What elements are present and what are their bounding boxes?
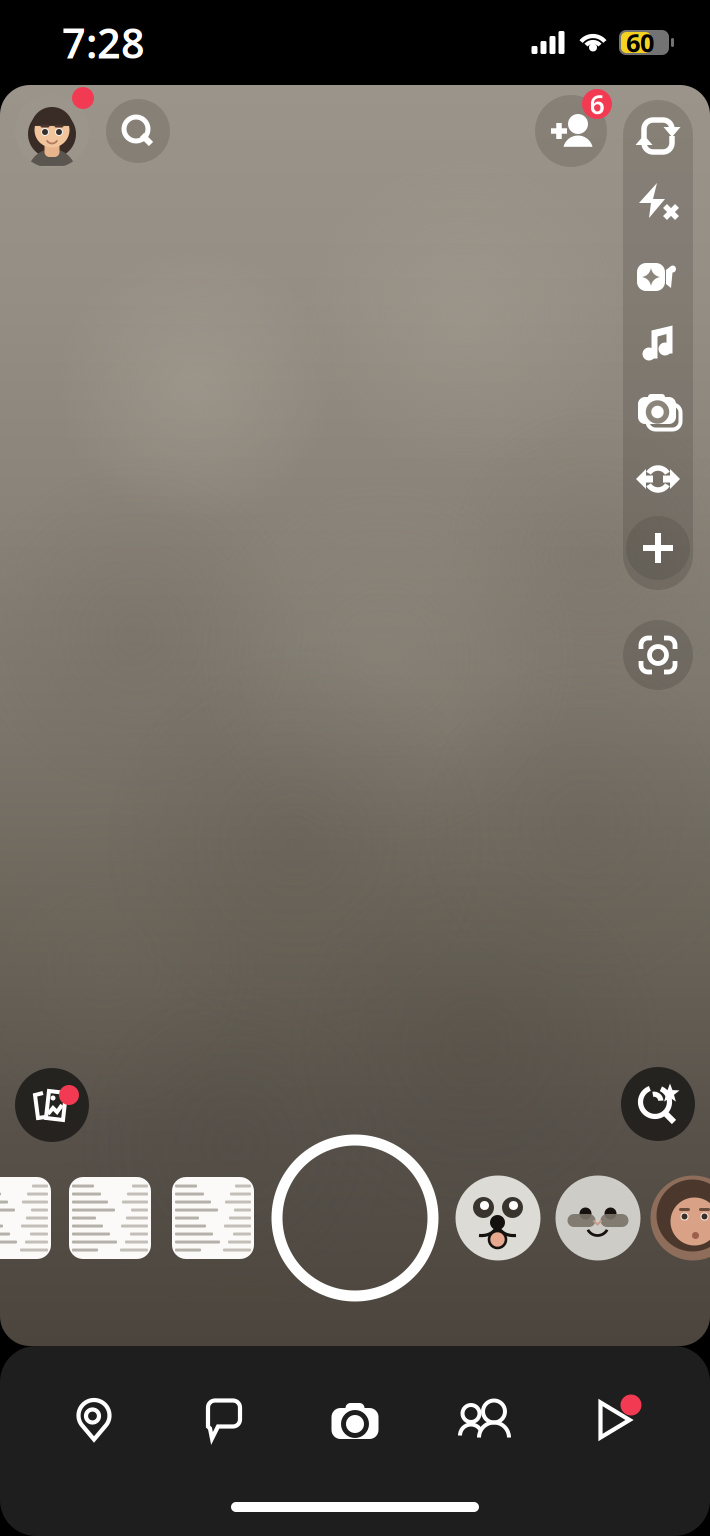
button[interactable]: Search <box>101 94 175 168</box>
button[interactable]: Camera <box>295 1370 415 1470</box>
button[interactable]: Add video <box>623 244 693 310</box>
button[interactable]: More <box>623 513 693 583</box>
button[interactable]: Friends <box>426 1370 546 1470</box>
button[interactable]: Map <box>34 1370 154 1470</box>
button[interactable]: Flip camera <box>623 102 693 168</box>
button[interactable]: Add friends <box>528 88 614 174</box>
button[interactable]: Spotlight <box>555 1370 675 1470</box>
button[interactable]: Scan <box>620 617 696 693</box>
staticText: 60 <box>626 26 654 59</box>
staticText: 7:28 <box>62 15 145 70</box>
button[interactable]: Camera roll <box>623 377 693 443</box>
staticText: 6 <box>589 86 604 122</box>
button[interactable]: Lens explorer <box>616 1062 700 1146</box>
button[interactable]: Flash off <box>623 169 693 235</box>
button[interactable]: Flip direction <box>623 446 693 512</box>
button[interactable]: Music <box>623 310 693 376</box>
button[interactable]: Memories <box>10 1063 94 1147</box>
button[interactable]: Capture <box>277 1140 433 1296</box>
button[interactable]: Chat <box>165 1370 285 1470</box>
button[interactable]: Profile <box>10 89 94 173</box>
